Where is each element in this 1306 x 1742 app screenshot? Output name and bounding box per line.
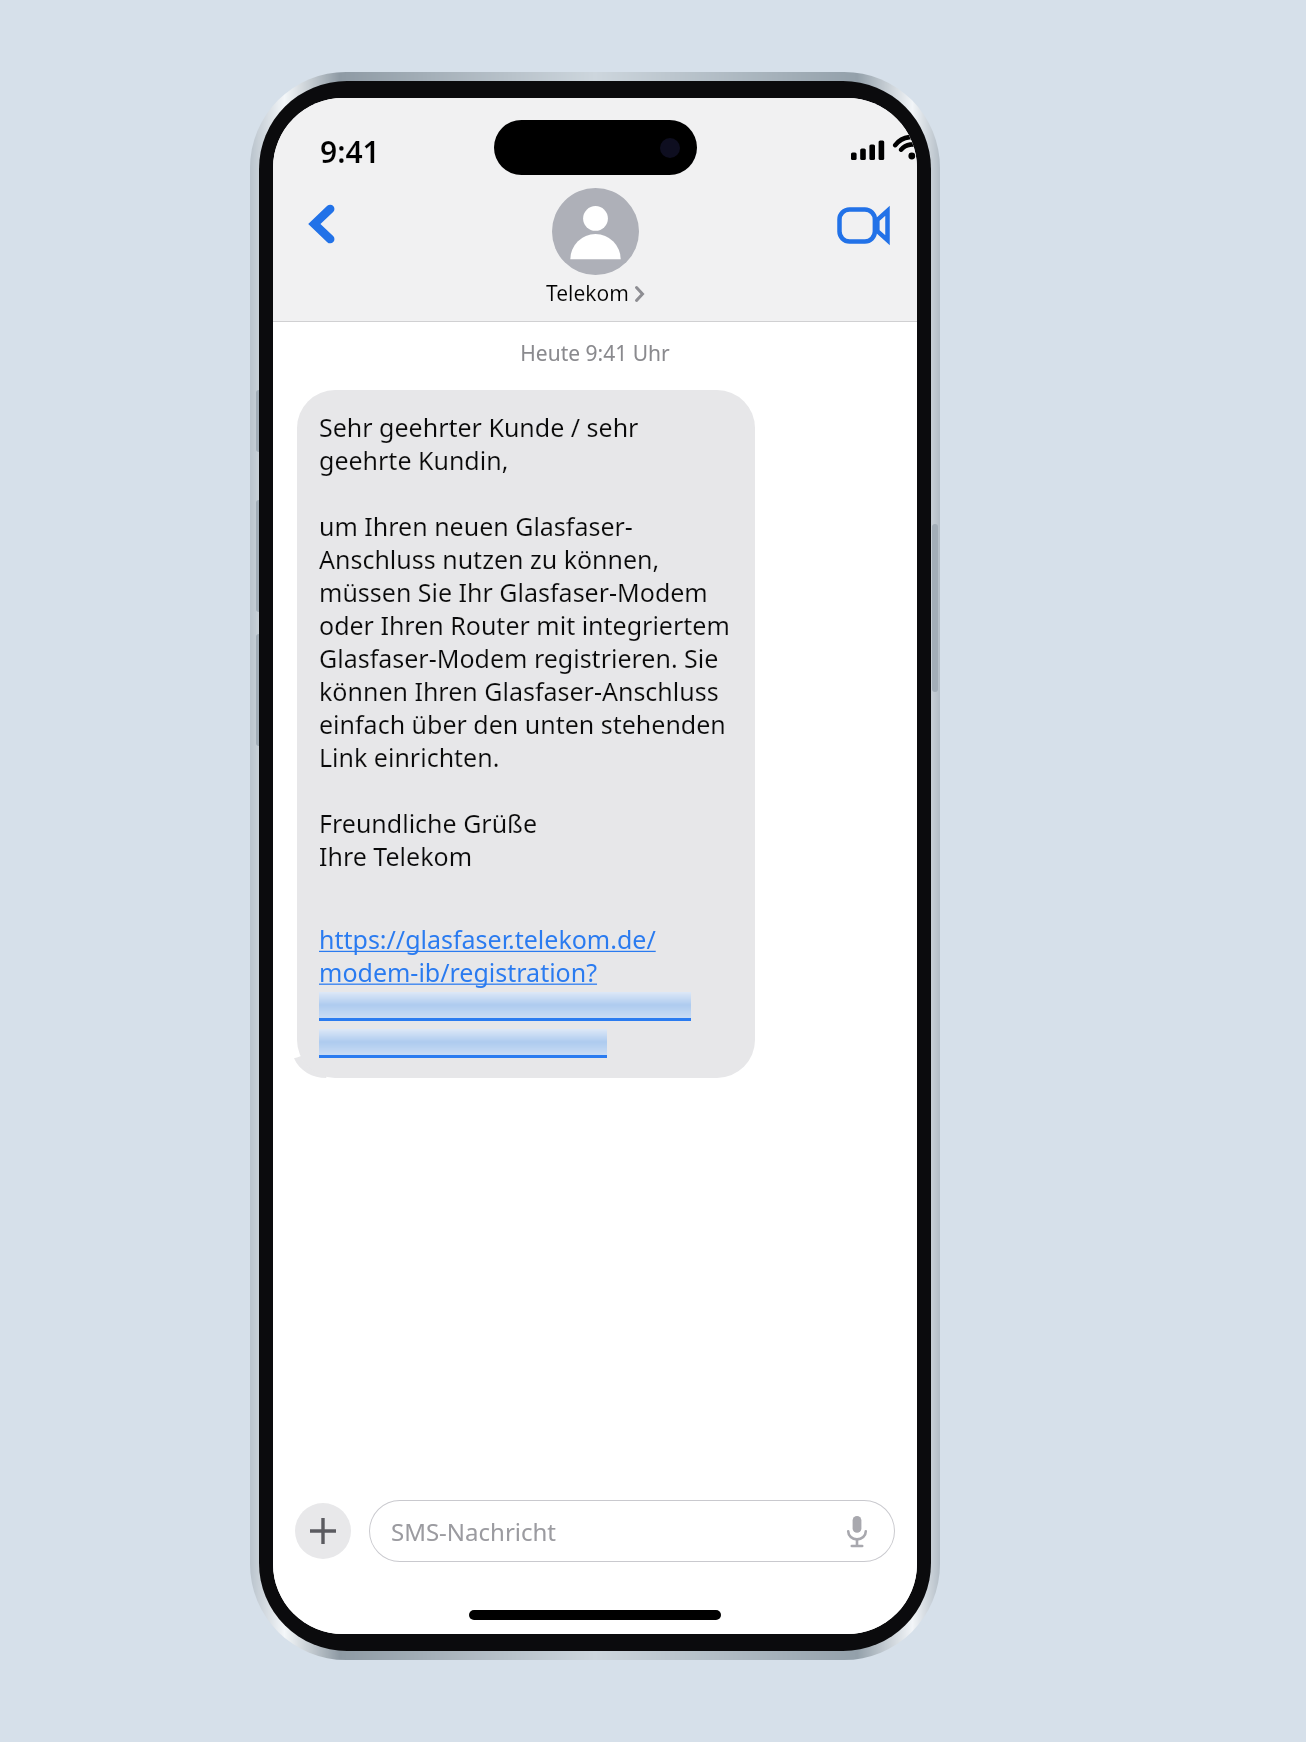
button[interactable]: Sehr geehrter Kunde / sehr geehrte Kundi… — [297, 390, 755, 1078]
button[interactable]: Dictate — [835, 1509, 879, 1553]
button[interactable]: https://glasfaser.telekom.de/ modem-ib/r… — [319, 922, 656, 989]
button[interactable]: Back — [293, 194, 353, 254]
staticText: Telekom — [546, 279, 629, 308]
button[interactable]: SMS-Nachricht — [369, 1500, 895, 1562]
staticText: SMS-Nachricht — [391, 1515, 557, 1548]
button[interactable]: Add attachment — [295, 1503, 351, 1559]
staticText: 9:41 — [320, 131, 380, 172]
button[interactable]: FaceTime video call — [833, 194, 895, 256]
staticText: Heute 9:41 Uhr — [273, 339, 917, 368]
button[interactable]: Telekom — [546, 188, 644, 308]
staticText: Sehr geehrter Kunde / sehr geehrte Kundi… — [319, 410, 730, 906]
